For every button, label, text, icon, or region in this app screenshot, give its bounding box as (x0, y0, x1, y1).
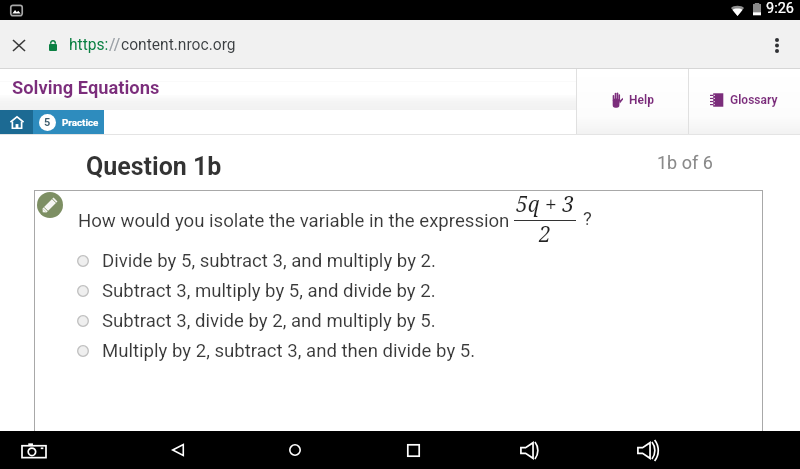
button[interactable]: Screenshot (12, 431, 56, 469)
staticText: 1b of 6 (657, 152, 713, 173)
staticText: Glossary (730, 93, 778, 107)
staticText: // (109, 36, 121, 54)
staticText: Divide by 5, subtract 3, and multiply by… (102, 250, 436, 272)
button[interactable]: Volume down (507, 431, 551, 469)
staticText: Solving Equations (12, 77, 160, 98)
button[interactable]: Home (273, 431, 317, 469)
staticText: 9:26 (766, 0, 794, 17)
button[interactable]: Volume up (624, 431, 668, 469)
staticText: Practice (62, 117, 99, 128)
staticText: 5q + 3 (516, 190, 574, 219)
button[interactable]: Divide by 5, subtract 3, and multiply by… (77, 246, 436, 276)
staticText: 2 (539, 220, 551, 249)
button[interactable]: Back (156, 431, 200, 469)
button[interactable]: Close (1, 27, 37, 63)
button[interactable]: Subtract 3, divide by 2, and multiply by… (77, 306, 436, 336)
button[interactable]: Glossary (688, 69, 800, 134)
staticText: ? (583, 208, 592, 230)
button[interactable]: Home (0, 110, 33, 134)
staticText: content.nroc.org (121, 36, 236, 54)
button[interactable]: Subtract 3, multiply by 5, and divide by… (77, 276, 436, 306)
button[interactable]: Help (576, 69, 688, 134)
staticText: https: (69, 36, 109, 54)
staticText: 5 (44, 116, 51, 129)
staticText: Question 1b (86, 152, 222, 181)
button[interactable]: 5 (33, 110, 104, 134)
staticText: Subtract 3, multiply by 5, and divide by… (102, 280, 436, 302)
button[interactable]: More options (759, 27, 795, 63)
button[interactable]: Multiply by 2, subtract 3, and then divi… (77, 336, 476, 366)
staticText: Multiply by 2, subtract 3, and then divi… (102, 340, 476, 362)
staticText: Help (629, 93, 654, 107)
staticText: Subtract 3, divide by 2, and multiply by… (102, 310, 436, 332)
button[interactable]: Recent apps (391, 431, 435, 469)
staticText: How would you isolate the variable in th… (78, 210, 510, 232)
